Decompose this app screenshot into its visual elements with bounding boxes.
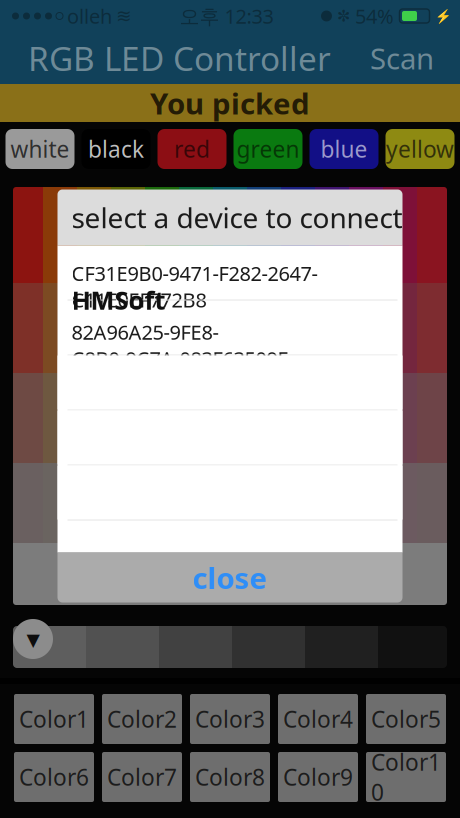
staticText: close [192,558,267,597]
button[interactable]: Color10 [366,752,446,802]
button[interactable]: Color6 [14,752,94,802]
button[interactable]: Color8 [190,752,270,802]
staticText: black [88,134,144,164]
staticText: white [10,134,69,164]
staticText: ✼ [337,7,350,25]
staticText: Color7 [107,762,177,792]
staticText: red [174,134,210,164]
staticText: CF31E9B0-9471-F282-2647-C11E0EF772B8 [71,260,317,313]
staticText: 54% [355,3,394,29]
staticText: Color10 [371,747,441,807]
staticText: Scan [370,38,434,77]
staticText: yellow [386,134,454,164]
staticText: HMSoft [71,283,165,317]
staticText: Color6 [19,762,89,792]
button[interactable]: Color3 [190,694,270,744]
button[interactable]: Color9 [278,752,358,802]
staticText: RGB LED Controller [28,36,331,80]
staticText: Color2 [107,704,177,734]
button[interactable]: close [57,552,402,602]
staticText: ⚡ [435,8,452,24]
staticText: 82A96A25-9FE8-C8B0-9C7A-083F63509F... [71,319,301,372]
button[interactable]: red [157,129,226,169]
button[interactable]: black [81,129,150,169]
staticText: Color8 [195,762,265,792]
staticText: You picked [150,83,310,122]
button[interactable]: Scan [354,28,450,87]
button[interactable]: white [5,129,74,169]
button[interactable]: green [233,129,302,169]
button[interactable]: yellow [385,129,454,169]
button[interactable]: Color7 [102,752,182,802]
button[interactable]: CF31E9B0-9471-F282-2647-C11E0EF772B8 [57,273,402,299]
staticText: Color1 [19,704,89,734]
staticText: ▾ [26,624,39,654]
button[interactable]: blue [309,129,378,169]
button[interactable]: Color4 [278,694,358,744]
staticText: select a device to connect [71,199,402,236]
staticText: blue [320,134,367,164]
staticText: 오후 12:33 [179,3,273,29]
button[interactable]: Brightness [13,619,53,659]
button[interactable]: Color2 [102,694,182,744]
staticText: Color3 [195,704,265,734]
staticText: green [236,134,299,164]
button[interactable]: HMSoft [57,300,402,354]
staticText: Color9 [283,762,353,792]
button[interactable]: Color5 [366,694,446,744]
staticText: olleh [67,3,112,29]
button[interactable]: Color1 [14,694,94,744]
staticText: Color5 [371,704,441,734]
staticText: Color4 [283,704,353,734]
staticText: ≋ [116,5,132,27]
